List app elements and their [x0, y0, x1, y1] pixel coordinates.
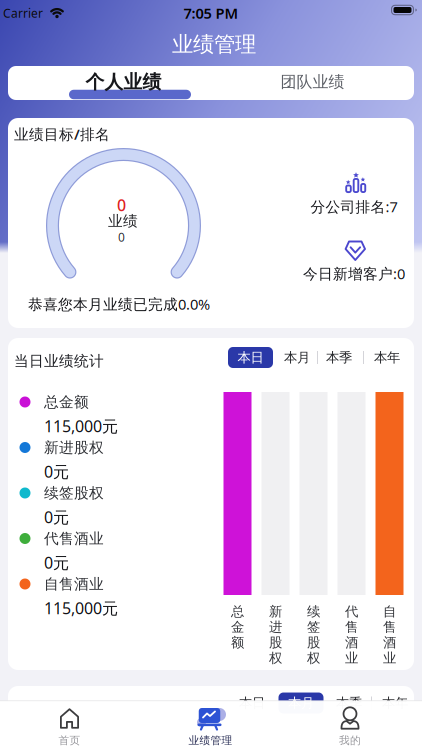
staticText: 本日 — [239, 695, 265, 711]
staticText: 恭喜您本月业绩已完成0.0% — [28, 294, 210, 314]
staticText: 本季 — [326, 349, 352, 366]
staticText: 售 — [345, 619, 358, 635]
button[interactable]: 本月 — [278, 347, 316, 368]
staticText: 业绩管理 — [172, 31, 256, 58]
staticText: 首页 — [58, 734, 80, 747]
staticText: 7:05 PM — [183, 3, 238, 23]
staticText: 今日新增客户:0 — [303, 264, 405, 283]
staticText: 售 — [383, 619, 396, 635]
staticText: 总 — [231, 603, 244, 620]
staticText: 新进股权 — [44, 438, 104, 456]
button[interactable]: 本季 — [320, 347, 358, 368]
staticText: 权 — [269, 650, 282, 666]
staticText: 总金额 — [44, 393, 89, 411]
staticText: 代售酒业 — [44, 529, 104, 547]
button[interactable]: 本日 — [233, 692, 271, 713]
staticText: 0元 — [44, 506, 69, 528]
staticText: 金 — [231, 619, 244, 635]
button[interactable]: 个人业绩 — [8, 66, 211, 100]
staticText: 股 — [269, 634, 282, 651]
staticText: 业绩 — [108, 212, 138, 230]
staticText: 0 — [118, 229, 125, 245]
staticText: 业绩目标/排名 — [14, 124, 110, 144]
staticText: 团队业绩 — [280, 72, 344, 92]
staticText: 额 — [231, 634, 244, 651]
button[interactable]: 我的 — [300, 700, 400, 749]
staticText: 进 — [269, 619, 282, 635]
button[interactable]: 业绩管理 — [155, 700, 265, 749]
staticText: 115,000元 — [44, 415, 118, 437]
staticText: 115,000元 — [44, 597, 118, 619]
staticText: 续 — [307, 603, 320, 620]
staticText: 本季 — [336, 695, 362, 711]
staticText: 本年 — [374, 349, 400, 366]
staticText: Carrier — [3, 5, 43, 21]
staticText: 新 — [269, 603, 282, 620]
button[interactable]: 本月 — [278, 692, 323, 713]
staticText: 0 — [117, 194, 126, 216]
staticText: 酒 — [345, 634, 358, 651]
staticText: 本年 — [382, 695, 408, 711]
button[interactable]: 本日 — [228, 347, 273, 368]
button[interactable]: 首页 — [19, 700, 119, 749]
staticText: 业绩管理 — [188, 734, 232, 747]
staticText: 代 — [345, 603, 358, 620]
button[interactable]: 团队业绩 — [211, 66, 414, 100]
staticText: 本月 — [284, 349, 310, 366]
staticText: 0元 — [44, 552, 69, 573]
staticText: 股 — [307, 634, 320, 651]
staticText: 续签股权 — [44, 484, 104, 502]
button[interactable]: 本年 — [368, 347, 406, 368]
staticText: 本月 — [288, 695, 314, 711]
staticText: 业 — [383, 650, 396, 666]
staticText: 签 — [307, 619, 320, 635]
staticText: 我的 — [339, 734, 361, 747]
staticText: 权 — [307, 650, 320, 666]
staticText: 当日业绩统计 — [14, 352, 104, 370]
staticText: 个人业绩 — [85, 70, 161, 93]
staticText: 本日 — [237, 349, 263, 366]
staticText: 自 — [383, 603, 396, 620]
staticText: 业 — [345, 650, 358, 666]
staticText: 酒 — [383, 634, 396, 651]
button[interactable]: 本季 — [330, 692, 368, 713]
staticText: 0元 — [44, 461, 69, 482]
button[interactable]: 本年 — [376, 692, 414, 713]
staticText: 分公司排名:7 — [310, 197, 397, 216]
staticText: 自售酒业 — [44, 575, 104, 593]
